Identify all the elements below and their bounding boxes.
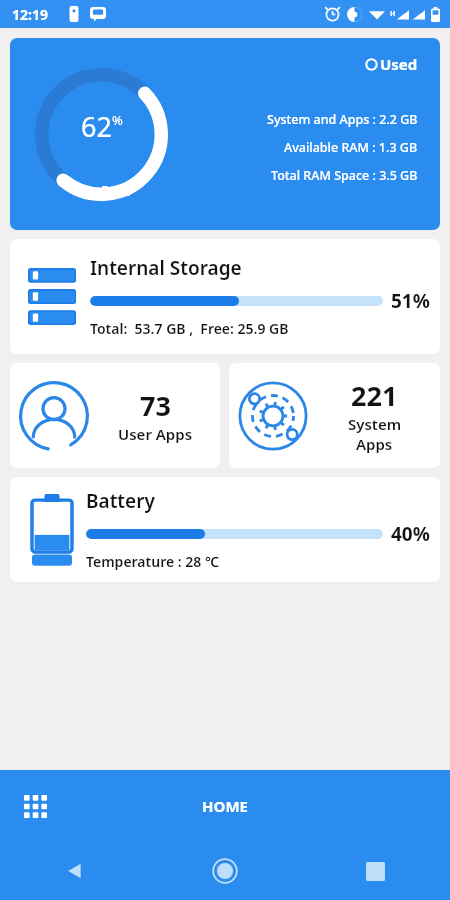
staticText: 40% <box>391 521 430 547</box>
staticText: 51% <box>391 288 430 314</box>
button[interactable]: Used <box>365 54 418 74</box>
button[interactable]: Internal Storage <box>10 239 440 354</box>
staticText: RAM <box>101 182 131 200</box>
staticText: Total RAM Space : 3.5 GB <box>271 167 418 184</box>
staticText: Temperature : 28 ℃ <box>86 552 219 571</box>
button[interactable]: Back <box>53 849 97 893</box>
button[interactable]: Used <box>10 38 440 230</box>
button[interactable]: Battery <box>10 477 440 582</box>
button[interactable]: Recents <box>353 849 397 893</box>
staticText: 221 <box>351 377 398 414</box>
staticText: Apps <box>356 434 393 454</box>
button[interactable]: 73 <box>10 363 220 468</box>
staticText: HOME <box>202 796 248 816</box>
button[interactable]: HOME <box>202 796 248 816</box>
staticText: System and Apps : 2.2 GB <box>267 111 418 128</box>
button[interactable]: 221 <box>229 363 440 468</box>
staticText: % <box>112 111 123 129</box>
staticText: System <box>348 414 402 434</box>
staticText: Available RAM : 1.3 GB <box>284 139 418 156</box>
staticText: Total: 53.7 GB , Free: 25.9 GB <box>90 319 289 338</box>
staticText: User Apps <box>118 424 193 444</box>
button[interactable]: Home <box>203 849 247 893</box>
staticText: Used <box>380 54 418 74</box>
staticText: 12:19 <box>12 5 48 24</box>
staticText: H <box>390 9 396 19</box>
staticText: 73 <box>140 387 171 424</box>
staticText: Battery <box>86 488 155 514</box>
button[interactable]: All apps <box>18 789 52 823</box>
staticText: Internal Storage <box>90 255 242 281</box>
staticText: 62 <box>81 108 112 145</box>
